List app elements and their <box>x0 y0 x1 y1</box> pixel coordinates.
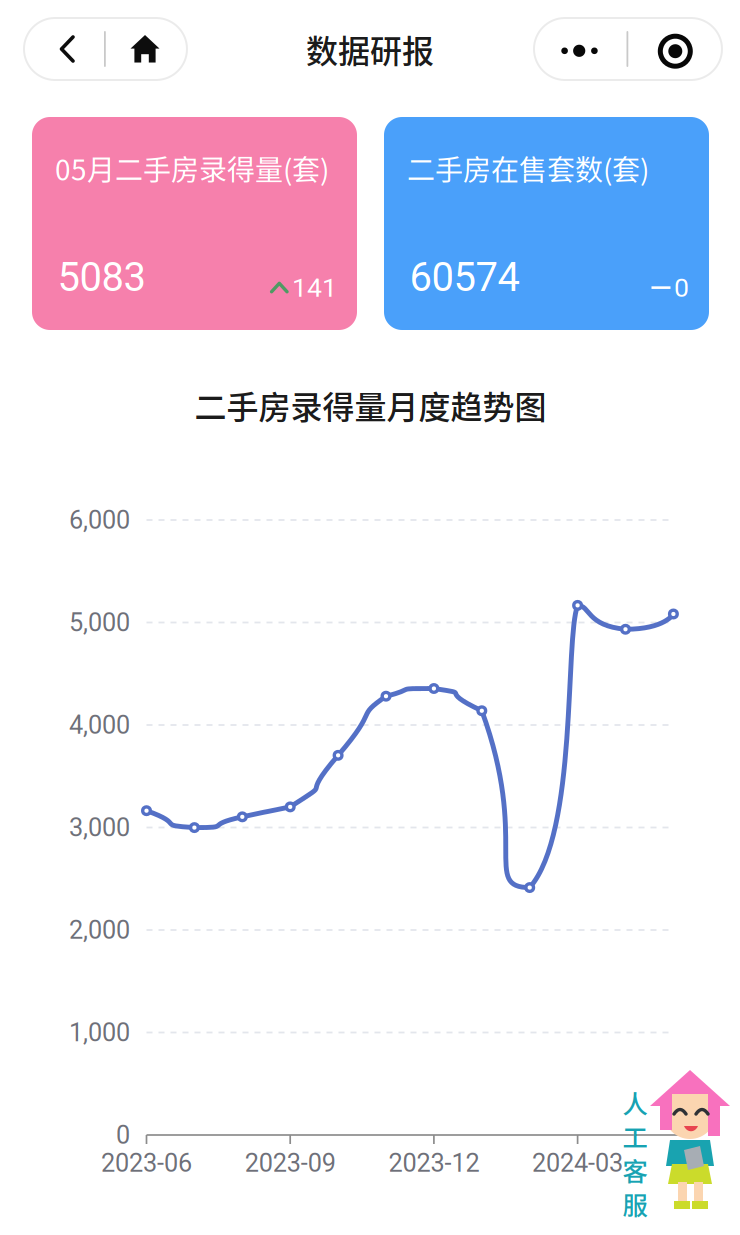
staticText: 3,000 <box>69 813 130 842</box>
staticText: 05月二手房录得量(套) <box>55 148 329 188</box>
button[interactable]: 05月二手房录得量(套) <box>32 117 357 330</box>
staticText: 客 <box>622 1151 647 1188</box>
staticText: 141 <box>292 272 337 303</box>
staticText: 1,000 <box>69 1018 130 1047</box>
staticText: 2024-03 <box>532 1148 623 1178</box>
staticText: 5083 <box>57 254 145 301</box>
staticText: 4,000 <box>69 710 130 740</box>
staticText: 5,000 <box>69 608 130 637</box>
button[interactable]: 二手房在售套数(套) <box>384 117 709 330</box>
button[interactable]: 人工客服 <box>622 1070 732 1222</box>
staticText: 二手房录得量月度趋势图 <box>194 382 546 428</box>
staticText: 2,000 <box>69 915 130 945</box>
staticText: 6,000 <box>69 505 130 535</box>
staticText: 0 <box>674 272 689 303</box>
staticText: 二手房在售套数(套) <box>407 148 649 188</box>
staticText: 服 <box>622 1185 647 1222</box>
staticText: 数据研报 <box>306 26 434 72</box>
staticText: 人 <box>622 1084 647 1121</box>
button[interactable]: Back and Home <box>24 18 187 80</box>
staticText: 0 <box>116 1120 130 1150</box>
staticText: 2023-06 <box>101 1148 192 1178</box>
staticText: 60574 <box>409 254 519 301</box>
staticText: 2023-12 <box>388 1148 479 1178</box>
staticText: 2023-09 <box>245 1148 336 1178</box>
button[interactable]: More options <box>534 18 722 80</box>
staticText: 工 <box>622 1118 647 1154</box>
